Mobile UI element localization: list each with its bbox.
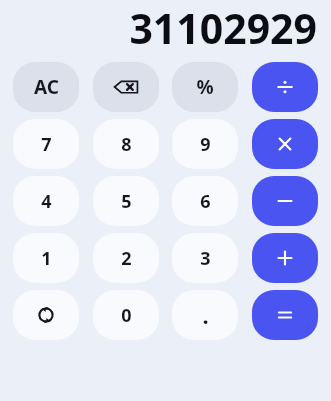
button[interactable]: 2: [93, 233, 159, 283]
button[interactable]: Toggle sign: [13, 290, 79, 340]
button[interactable]: 7: [13, 119, 79, 169]
button[interactable]: AC: [13, 62, 79, 112]
button[interactable]: 9: [172, 119, 238, 169]
button[interactable]: Add: [252, 233, 318, 283]
staticText: .: [202, 300, 209, 330]
staticText: 6: [200, 189, 211, 214]
staticText: 31102929: [129, 0, 317, 56]
button[interactable]: %: [172, 62, 238, 112]
staticText: 9: [200, 132, 211, 157]
button[interactable]: Backspace: [93, 62, 159, 112]
button[interactable]: 3: [172, 233, 238, 283]
button[interactable]: 0: [93, 290, 159, 340]
button[interactable]: Divide: [252, 62, 318, 112]
staticText: 0: [121, 303, 132, 328]
button[interactable]: 6: [172, 176, 238, 226]
button[interactable]: .: [172, 290, 238, 340]
staticText: 3: [200, 246, 211, 271]
button[interactable]: 1: [13, 233, 79, 283]
staticText: 7: [41, 132, 52, 157]
button[interactable]: Equals: [252, 290, 318, 340]
staticText: 4: [41, 189, 52, 214]
button[interactable]: Subtract: [252, 176, 318, 226]
button[interactable]: 5: [93, 176, 159, 226]
button[interactable]: Multiply: [252, 119, 318, 169]
staticText: 1: [41, 246, 52, 271]
button[interactable]: 8: [93, 119, 159, 169]
staticText: %: [196, 74, 214, 100]
button[interactable]: 4: [13, 176, 79, 226]
staticText: AC: [34, 74, 59, 100]
staticText: 2: [121, 246, 132, 271]
staticText: 8: [121, 132, 132, 157]
staticText: 5: [121, 189, 132, 214]
